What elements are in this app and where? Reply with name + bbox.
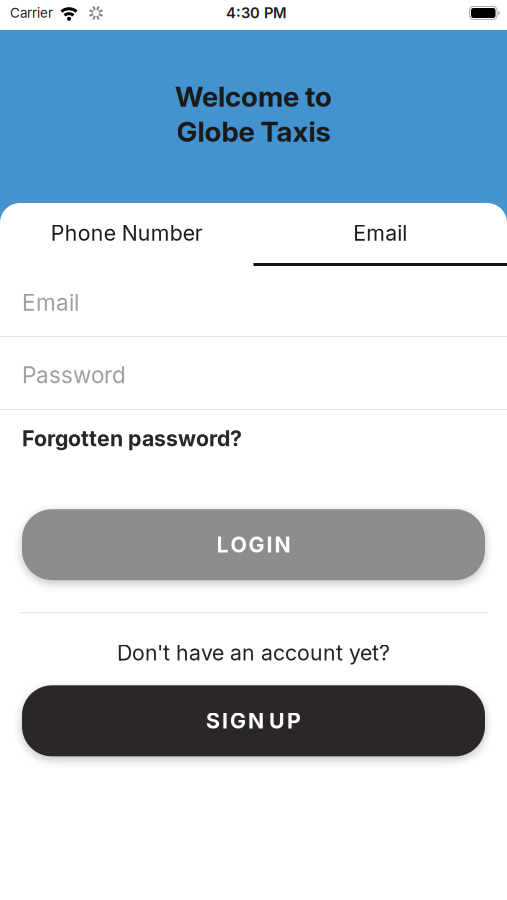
staticText: Globe Taxis [176, 115, 330, 148]
staticText: L O G I N [216, 532, 290, 557]
staticText: Email [22, 289, 79, 316]
staticText: Don't have an account yet? [117, 640, 390, 665]
button[interactable]: Email [253, 203, 507, 266]
staticText: Password [22, 362, 126, 388]
button[interactable]: S I G N U P [22, 685, 485, 756]
staticText: Welcome to [175, 80, 332, 113]
button[interactable]: L O G I N [22, 509, 485, 580]
staticText: Email [353, 220, 407, 246]
button[interactable]: Forgotten password? [22, 426, 242, 451]
staticText: S I G N U P [206, 708, 301, 733]
staticText: Forgotten password? [22, 426, 242, 451]
staticText: Phone Number [51, 220, 203, 246]
button[interactable]: Email [0, 266, 507, 337]
staticText: 4:30 PM [226, 4, 287, 22]
button[interactable]: Phone Number [0, 203, 253, 266]
staticText: Carrier [10, 5, 53, 21]
button[interactable]: Password [0, 337, 507, 410]
